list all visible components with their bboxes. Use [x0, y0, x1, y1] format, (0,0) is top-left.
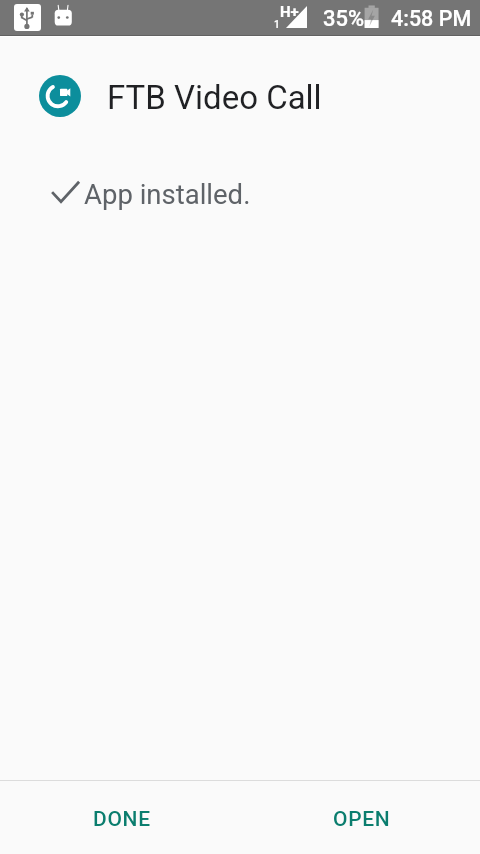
- staticText: H+: [280, 3, 299, 21]
- staticText: FTB Video Call: [107, 78, 322, 117]
- other: USB connected: [14, 4, 41, 31]
- staticText: 4:58 PM: [391, 6, 472, 31]
- staticText: OPEN: [333, 807, 391, 832]
- button[interactable]: OPEN: [242, 783, 480, 854]
- staticText: DONE: [93, 807, 151, 832]
- other: Android system: [51, 3, 75, 29]
- staticText: 1: [274, 19, 280, 31]
- button[interactable]: DONE: [2, 783, 242, 854]
- staticText: 35%: [323, 6, 365, 32]
- staticText: App installed.: [84, 178, 251, 210]
